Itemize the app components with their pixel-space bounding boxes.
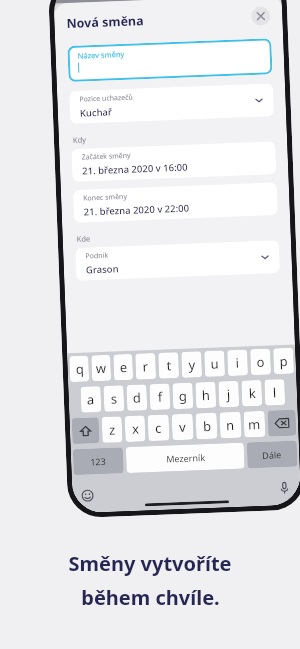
button[interactable]: c xyxy=(148,414,170,441)
staticText: 21. března 2020 v 22:00 xyxy=(83,201,190,219)
staticText: h xyxy=(201,386,211,404)
staticText: Název směny xyxy=(77,49,125,61)
staticText: Nová směna xyxy=(66,12,145,32)
staticText: Směny vytvoříte xyxy=(68,550,232,577)
button[interactable]: k xyxy=(241,380,262,407)
button[interactable]: Emoji xyxy=(78,486,97,505)
button[interactable]: d xyxy=(126,384,147,411)
staticText: Konec směny xyxy=(83,192,127,204)
button[interactable]: Smazat xyxy=(267,410,296,437)
staticText: Kuchař xyxy=(80,105,113,120)
button[interactable]: v xyxy=(171,413,193,440)
staticText: Grason xyxy=(86,262,119,277)
staticText: Podnik xyxy=(85,251,109,261)
button[interactable]: Shift xyxy=(72,417,100,444)
staticText: m xyxy=(248,415,261,433)
staticText: z xyxy=(109,420,116,439)
button[interactable]: b xyxy=(195,413,217,439)
staticText: Mezerník xyxy=(166,451,205,465)
staticText: q xyxy=(75,360,84,378)
staticText: k xyxy=(248,384,256,402)
button[interactable]: g xyxy=(172,382,193,409)
staticText: t xyxy=(166,356,172,374)
button[interactable]: s xyxy=(103,385,124,412)
button[interactable]: p xyxy=(273,348,294,374)
button[interactable]: Dále xyxy=(247,441,298,468)
staticText: e xyxy=(119,358,128,376)
button[interactable]: q xyxy=(69,355,89,382)
staticText: d xyxy=(132,388,141,407)
staticText: r xyxy=(142,357,149,375)
staticText: p xyxy=(279,352,288,370)
button[interactable]: 123 xyxy=(73,447,124,475)
button[interactable]: a xyxy=(80,386,101,413)
staticText: j xyxy=(226,385,231,403)
staticText: g xyxy=(178,387,187,405)
button[interactable]: o xyxy=(250,348,271,375)
button[interactable]: Pozice uchazečů xyxy=(69,83,274,124)
button[interactable]: f xyxy=(149,383,170,410)
button[interactable]: Mezerník xyxy=(126,443,245,473)
staticText: Kde xyxy=(76,233,91,244)
button[interactable]: h xyxy=(195,382,216,408)
button[interactable]: m xyxy=(243,411,265,438)
staticText: Pozice uchazečů xyxy=(79,93,133,105)
staticText: o xyxy=(256,353,265,371)
staticText: l xyxy=(272,383,277,401)
button[interactable]: i xyxy=(227,349,248,376)
staticText: 123 xyxy=(90,455,106,467)
staticText: x xyxy=(132,420,139,438)
button[interactable]: Diktovat xyxy=(275,479,294,497)
staticText: b xyxy=(203,417,211,435)
button[interactable]: Zavřít xyxy=(251,6,271,26)
staticText: s xyxy=(110,389,118,408)
staticText: i xyxy=(235,354,240,372)
staticText: Dále xyxy=(262,448,282,461)
button[interactable]: w xyxy=(91,355,111,381)
staticText: n xyxy=(226,416,235,434)
button[interactable]: r xyxy=(135,353,156,380)
staticText: během chvíle. xyxy=(81,584,220,611)
button[interactable]: l xyxy=(264,379,285,406)
staticText: Kdy xyxy=(73,134,87,145)
staticText: v xyxy=(179,418,186,436)
button[interactable]: e xyxy=(113,354,133,380)
staticText: Začátek směny xyxy=(81,151,131,163)
button[interactable]: n xyxy=(219,412,241,438)
staticText: a xyxy=(87,390,95,409)
button[interactable]: Podnik xyxy=(75,240,280,281)
button[interactable]: y xyxy=(181,351,202,378)
button[interactable]: Začátek směny xyxy=(71,141,276,182)
staticText: w xyxy=(95,359,107,377)
staticText: u xyxy=(210,354,220,373)
button[interactable]: Konec směny xyxy=(73,182,278,223)
button[interactable]: j xyxy=(218,381,239,407)
staticText: 21. března 2020 v 16:00 xyxy=(82,160,188,178)
button[interactable]: u xyxy=(204,350,225,377)
button[interactable]: x xyxy=(125,415,146,442)
button[interactable]: t xyxy=(158,352,179,379)
staticText: c xyxy=(155,419,162,437)
staticText: f xyxy=(157,388,163,406)
button[interactable]: Název směny xyxy=(67,38,272,82)
staticText: y xyxy=(188,355,196,374)
button[interactable]: z xyxy=(102,416,123,443)
